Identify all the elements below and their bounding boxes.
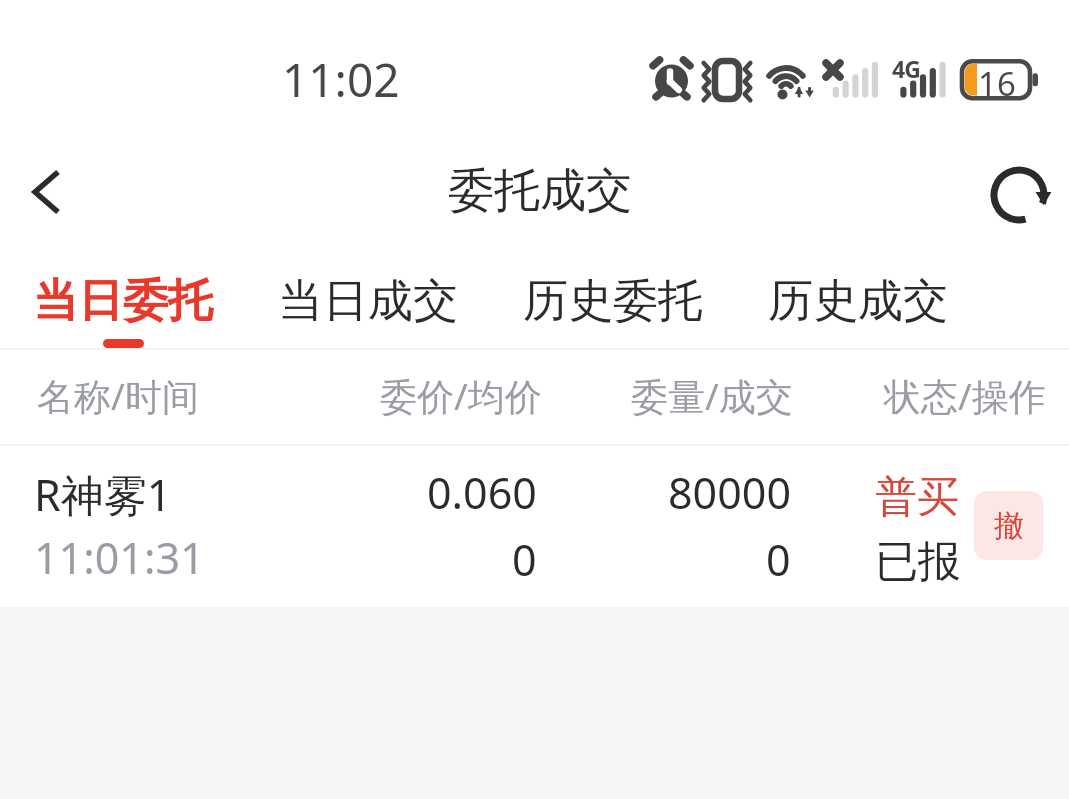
staticText: 历史委托 xyxy=(523,273,703,330)
staticText: 委量/成交 xyxy=(631,370,793,421)
staticText: 名称/时间 xyxy=(37,370,199,421)
button[interactable]: 历史委托 xyxy=(523,250,703,348)
button[interactable]: 当日委托 xyxy=(33,250,213,348)
staticText: 委托成交 xyxy=(448,162,632,220)
button[interactable]: R神雾1 xyxy=(0,446,1069,607)
staticText: 当日成交 xyxy=(278,273,458,330)
button[interactable]: 撤 xyxy=(974,491,1043,560)
staticText: 普买 xyxy=(875,471,959,524)
button[interactable]: Refresh xyxy=(969,140,1069,250)
staticText: 历史成交 xyxy=(768,273,948,330)
staticText: 已报 xyxy=(875,535,961,589)
button[interactable]: 当日成交 xyxy=(278,250,458,348)
button[interactable]: Back xyxy=(0,140,90,250)
staticText: 0 xyxy=(512,530,537,589)
staticText: R神雾1 xyxy=(34,465,172,524)
staticText: 4G xyxy=(892,53,920,84)
staticText: 撤 xyxy=(994,507,1024,545)
staticText: 委价/均价 xyxy=(380,370,542,421)
staticText: 80000 xyxy=(668,463,791,522)
staticText: 16 xyxy=(978,61,1016,106)
staticText: 0 xyxy=(766,530,791,589)
staticText: 11:02 xyxy=(282,48,400,111)
staticText: 状态/操作 xyxy=(884,370,1046,421)
staticText: 当日委托 xyxy=(33,273,213,330)
button[interactable]: 历史成交 xyxy=(768,250,948,348)
staticText: 11:01:31 xyxy=(34,528,205,587)
staticText: 0.060 xyxy=(427,463,537,522)
